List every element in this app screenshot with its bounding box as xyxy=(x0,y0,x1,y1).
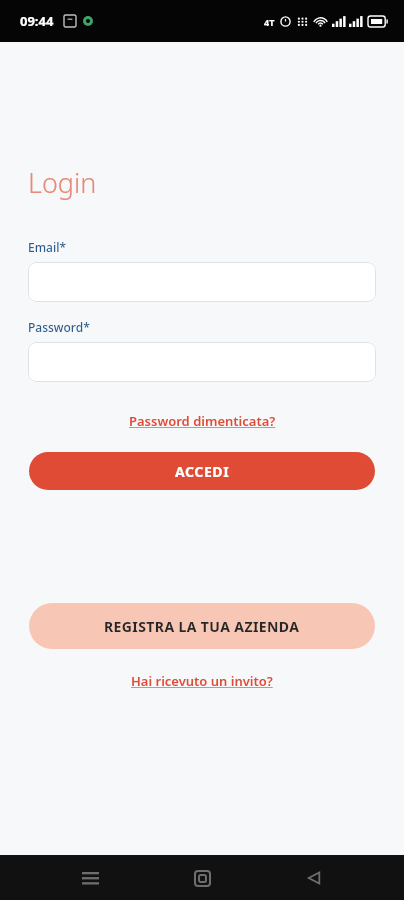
button[interactable]: Home xyxy=(180,856,224,900)
staticText: REGISTRA LA TUA AZIENDA xyxy=(104,617,300,636)
button[interactable]: ACCEDI xyxy=(29,452,375,490)
button[interactable]: Recent apps xyxy=(68,856,112,900)
staticText: Email* xyxy=(28,239,66,255)
button[interactable]: Text field xyxy=(28,262,376,302)
button[interactable]: Text field xyxy=(28,342,376,382)
button[interactable]: Back xyxy=(292,856,336,900)
staticText: ACCEDI xyxy=(175,462,230,481)
staticText: 4T xyxy=(264,16,275,28)
button[interactable]: Hai ricevuto un invito? xyxy=(127,668,277,694)
button[interactable]: REGISTRA LA TUA AZIENDA xyxy=(29,603,375,649)
staticText: Password* xyxy=(28,319,90,335)
staticText: 09:44 xyxy=(20,12,54,30)
staticText: Login xyxy=(28,164,97,201)
staticText: Password dimenticata? xyxy=(129,412,276,430)
button[interactable]: Password dimenticata? xyxy=(125,408,280,434)
staticText: Hai ricevuto un invito? xyxy=(131,672,273,690)
